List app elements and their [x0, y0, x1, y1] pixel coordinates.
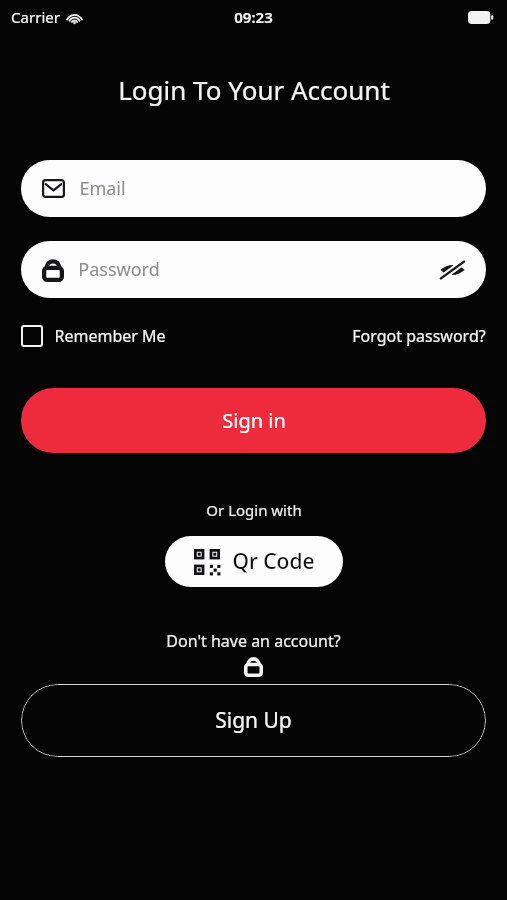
staticText: Password: [78, 257, 160, 282]
button[interactable]: Sign in: [21, 388, 486, 453]
other: Email: [42, 179, 65, 198]
button[interactable]: Remember Me: [21, 320, 166, 352]
button[interactable]: Qr Code: [165, 536, 343, 587]
button[interactable]: Forgot password?: [352, 320, 486, 352]
staticText: Email: [79, 176, 126, 201]
staticText: Sign Up: [215, 706, 292, 735]
button[interactable]: Password: [21, 241, 486, 298]
staticText: Forgot password?: [352, 325, 486, 347]
other: Qr Code: [194, 549, 220, 575]
staticText: Don't have an account?: [166, 630, 341, 652]
staticText: Sign in: [222, 407, 286, 434]
staticText: 09:23: [234, 7, 273, 27]
staticText: Or Login with: [206, 500, 302, 520]
staticText: Login To Your Account: [118, 72, 390, 107]
staticText: Qr Code: [232, 547, 315, 576]
staticText: Remember Me: [54, 325, 166, 347]
button[interactable]: Sign Up: [21, 684, 486, 757]
button[interactable]: Email: [21, 160, 486, 217]
staticText: Carrier: [11, 7, 60, 27]
button[interactable]: Show password: [439, 259, 466, 281]
